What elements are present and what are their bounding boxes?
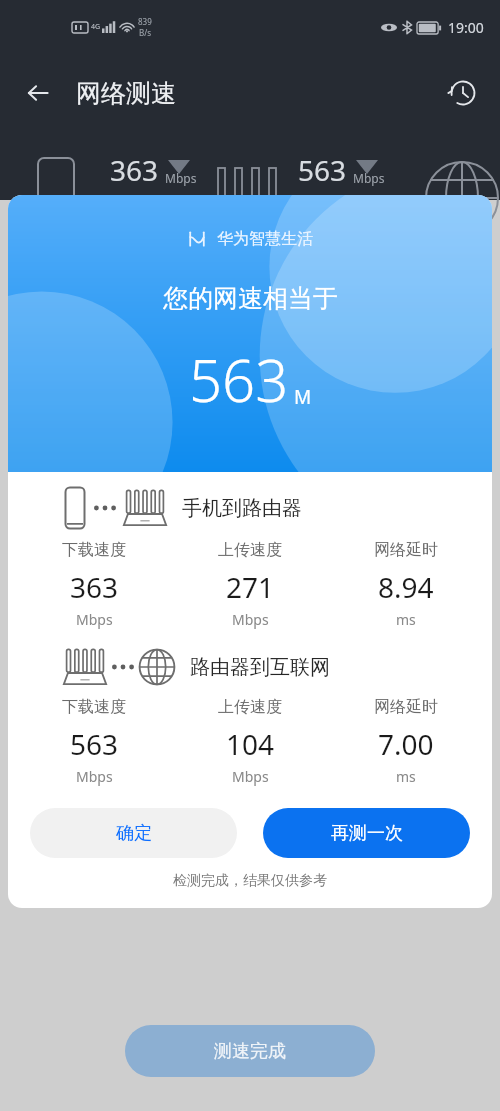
- staticText: 华为智慧生活: [217, 229, 313, 249]
- staticText: 网络延时: [374, 540, 438, 560]
- staticText: 确定: [116, 822, 152, 845]
- button[interactable]: History: [440, 70, 486, 116]
- staticText: M: [294, 384, 312, 410]
- staticText: 您的网速相当于: [163, 283, 338, 314]
- staticText: 路由器到互联网: [190, 655, 330, 680]
- staticText: 19:00: [448, 18, 484, 37]
- staticText: 下载速度: [62, 540, 126, 560]
- staticText: ms: [396, 610, 416, 629]
- staticText: 563: [189, 340, 289, 419]
- staticText: 104: [226, 725, 275, 763]
- staticText: 网络延时: [374, 697, 438, 717]
- staticText: 839: [138, 16, 152, 27]
- staticText: Mbps: [353, 170, 385, 186]
- staticText: 563: [298, 151, 347, 189]
- staticText: 363: [70, 568, 119, 606]
- staticText: ms: [396, 767, 416, 786]
- staticText: Mbps: [76, 610, 113, 629]
- button[interactable]: 测速完成: [125, 1025, 375, 1077]
- button[interactable]: Back: [14, 69, 62, 117]
- staticText: 再测一次: [331, 822, 403, 845]
- staticText: 检测完成，结果仅供参考: [8, 872, 492, 890]
- staticText: 网络测速: [76, 78, 176, 109]
- staticText: B/s: [139, 27, 152, 38]
- button[interactable]: 确定: [30, 808, 237, 858]
- staticText: Mbps: [76, 767, 113, 786]
- staticText: 563: [70, 725, 119, 763]
- staticText: 7.00: [378, 725, 434, 763]
- staticText: 下载速度: [62, 697, 126, 717]
- staticText: 测速完成: [214, 1040, 286, 1063]
- staticText: Mbps: [232, 610, 269, 629]
- staticText: 手机到路由器: [182, 496, 302, 521]
- staticText: Mbps: [165, 170, 197, 186]
- staticText: 271: [226, 568, 275, 606]
- staticText: 363: [110, 151, 159, 189]
- staticText: 上传速度: [218, 540, 282, 560]
- button[interactable]: 再测一次: [263, 808, 470, 858]
- staticText: 上传速度: [218, 697, 282, 717]
- staticText: 8.94: [378, 568, 434, 606]
- staticText: 4G: [91, 22, 101, 32]
- staticText: Mbps: [232, 767, 269, 786]
